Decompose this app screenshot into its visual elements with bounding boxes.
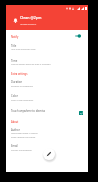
staticText: Title xyxy=(11,44,17,48)
button[interactable]: Toggle notify xyxy=(72,33,83,39)
button[interactable]: Author xyxy=(6,126,88,132)
button[interactable]: Touch anywhere to dismiss xyxy=(77,109,85,116)
button[interactable]: Color xyxy=(6,92,88,98)
button[interactable]: Edit xyxy=(43,148,55,160)
staticText: Email xyxy=(11,144,18,148)
staticText: Time to display when the alert is activa… xyxy=(11,63,51,66)
staticText: https://github.com/rashid xyxy=(11,136,36,139)
button[interactable]: Touch anywhere to dismiss xyxy=(6,107,88,113)
staticText: Clean @2pm xyxy=(20,15,42,20)
button[interactable]: Email xyxy=(6,142,88,148)
staticText: Color of the notification xyxy=(11,99,34,102)
staticText: Duration of notification xyxy=(11,85,33,88)
button[interactable]: Extra settings xyxy=(10,71,29,76)
staticText: Your most important stuff xyxy=(11,48,36,51)
staticText: Notify xyxy=(11,35,19,38)
button[interactable]: About xyxy=(10,119,20,124)
staticText: Update artwork xyxy=(20,23,37,26)
button[interactable]: Title xyxy=(6,42,88,48)
staticText: Extra settings xyxy=(11,72,28,75)
button[interactable]: Notify xyxy=(10,34,20,39)
button[interactable]: Notification xyxy=(10,15,20,25)
staticText: Color xyxy=(11,94,18,98)
staticText: Duration xyxy=(11,80,23,84)
button[interactable]: Time xyxy=(6,57,88,63)
staticText: Contact the developer xyxy=(11,149,32,152)
staticText: About xyxy=(11,120,19,123)
button[interactable]: Duration xyxy=(6,78,88,84)
staticText: Mohammed David Al Rashid xyxy=(11,132,38,135)
staticText: Time xyxy=(11,59,18,63)
staticText: Author xyxy=(11,128,20,132)
staticText: Touch anywhere to dismiss xyxy=(11,109,46,113)
